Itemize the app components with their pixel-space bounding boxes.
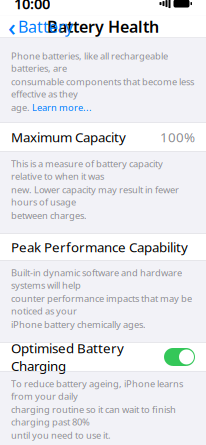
staticText: Phone batteries, like all rechargeable b… bbox=[11, 50, 168, 74]
staticText: new. Lower capacity may result in fewer … bbox=[11, 183, 179, 208]
staticText: Learn more... bbox=[32, 101, 92, 113]
staticText: charging routine so it can wait to finis… bbox=[11, 403, 176, 428]
staticText: Optimised Battery Charging bbox=[11, 339, 124, 375]
button[interactable]: Optimised Battery Charging bbox=[0, 343, 206, 371]
staticText: Maximum Capacity bbox=[11, 128, 126, 146]
staticText: 100% bbox=[160, 128, 195, 146]
staticText: Peak Performance Capability bbox=[11, 238, 188, 256]
staticText: until you need to use it. bbox=[11, 429, 111, 441]
staticText: Built-in dynamic software and hardware s… bbox=[11, 266, 182, 291]
button[interactable]: ‹ bbox=[2, 7, 79, 46]
staticText: Battery Health bbox=[47, 16, 159, 37]
staticText: This is a measure of battery capacity re… bbox=[11, 157, 163, 182]
staticText: 10:00 bbox=[14, 0, 50, 13]
button[interactable]: Learn more... bbox=[32, 101, 92, 113]
staticText: To reduce battery ageing, iPhone learns … bbox=[11, 377, 183, 402]
staticText: consumable components that become less e… bbox=[11, 75, 194, 100]
staticText: iPhone battery chemically ages. bbox=[11, 318, 146, 330]
staticText: counter performance impacts that may be … bbox=[11, 292, 192, 317]
staticText: ‹ bbox=[8, 11, 16, 42]
staticText: between charges. bbox=[11, 209, 87, 221]
staticText: Battery bbox=[18, 16, 73, 37]
staticText: age. bbox=[11, 101, 30, 113]
